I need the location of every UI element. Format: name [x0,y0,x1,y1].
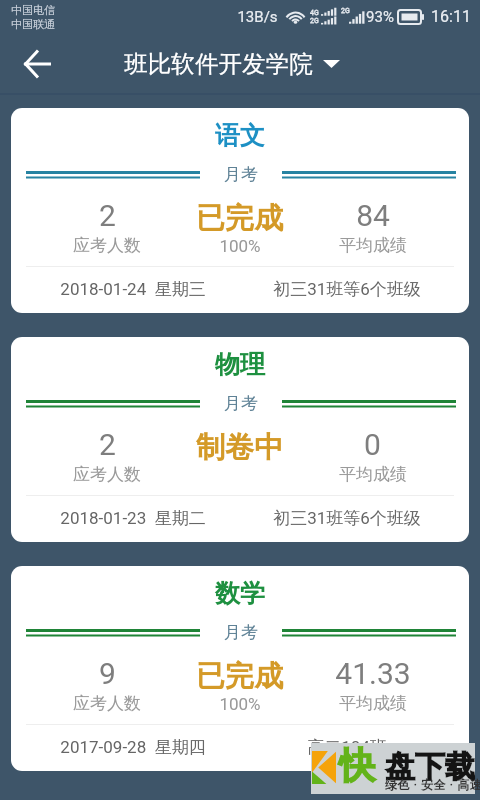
staticText: 4G [310,9,319,17]
button[interactable]: 班比软件开发学院 [124,49,340,79]
staticText: 月考 [224,164,258,184]
staticText: 盘下载 [385,748,475,786]
button[interactable]: 数学 [11,566,469,771]
staticText: 应考人数 [73,464,141,485]
staticText: 高二104班 [307,737,387,758]
staticText: 2 [99,427,116,462]
staticText: 平均成绩 [339,693,407,714]
staticText: 平均成绩 [339,464,407,485]
staticText: 2 [99,198,116,233]
staticText: 2018-01-24 星期三 [60,279,206,300]
staticText: 中国电信 [11,3,55,17]
staticText: 2018-01-23 星期二 [60,508,206,529]
staticText: 应考人数 [73,693,141,714]
staticText: 语文 [215,120,265,151]
staticText: 84 [356,198,390,233]
button[interactable]: 语文 [11,108,469,313]
staticText: 月考 [224,393,258,413]
staticText: 应考人数 [73,235,141,256]
staticText: 2G [341,7,350,15]
button[interactable]: 物理 [11,337,469,542]
staticText: 月考 [224,622,258,642]
staticText: 快 [339,743,375,788]
staticText: 物理 [215,349,265,380]
staticText: 41.33 [335,656,411,691]
staticText: 9 [99,656,116,691]
staticText: 已完成 [196,200,283,237]
staticText: 班比软件开发学院 [124,49,313,79]
staticText: 93% [366,8,394,26]
staticText: 数学 [215,578,265,609]
staticText: 制卷中 [196,429,283,466]
staticText: 初三31班等6个班级 [273,279,421,300]
staticText: 2G [310,17,319,25]
staticText: 100% [219,236,261,256]
staticText: 平均成绩 [339,235,407,256]
staticText: 绿色 · 安全 · 高速 [385,777,480,792]
staticText: 0 [364,427,381,462]
staticText: 中国联通 [11,17,55,31]
staticText: 16:11 [431,7,471,26]
staticText: 2017-09-28 星期四 [60,737,206,758]
staticText: 100% [219,694,261,714]
staticText: 13B/s [237,8,278,26]
staticText: 已完成 [196,658,283,695]
staticText: 初三31班等6个班级 [273,508,421,529]
button[interactable]: Back [11,38,63,90]
